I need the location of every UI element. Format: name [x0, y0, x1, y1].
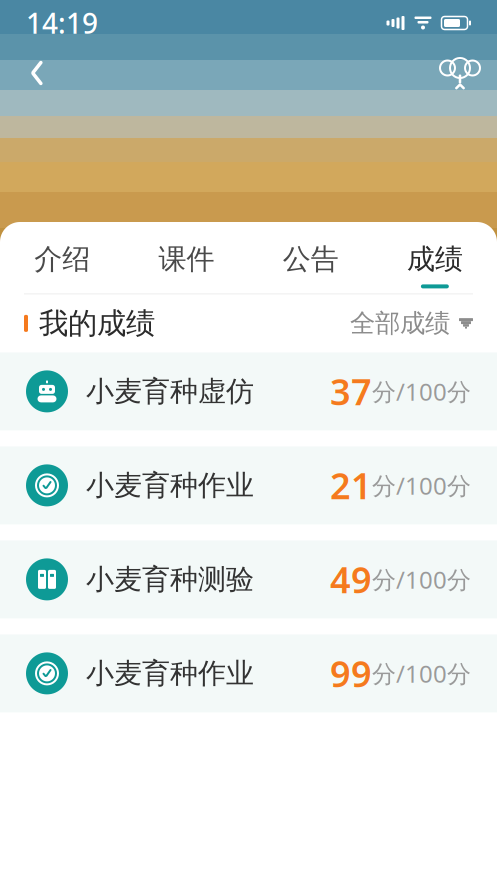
- staticText: 小麦育种作业: [86, 656, 254, 691]
- button[interactable]: 成绩: [373, 222, 497, 293]
- staticText: 我的成绩: [39, 305, 155, 341]
- staticText: 成绩: [407, 242, 463, 276]
- staticText: 全部成绩: [350, 308, 450, 339]
- staticText: 分/100分: [372, 375, 471, 407]
- staticText: 21: [330, 461, 372, 509]
- staticText: 小麦育种测验: [86, 562, 254, 597]
- staticText: 49: [330, 555, 372, 603]
- button[interactable]: 公告: [248, 222, 373, 293]
- staticText: 分/100分: [372, 657, 471, 689]
- staticText: 小麦育种虚仿: [86, 374, 254, 409]
- button[interactable]: 小麦育种虚仿: [0, 352, 497, 430]
- button[interactable]: 小麦育种作业: [0, 634, 497, 712]
- staticText: 小麦育种作业: [86, 468, 254, 503]
- staticText: 公告: [283, 242, 339, 276]
- button[interactable]: 全部成绩: [350, 302, 473, 345]
- button[interactable]: Download: [437, 50, 483, 96]
- button[interactable]: 课件: [124, 222, 248, 293]
- button[interactable]: 小麦育种测验: [0, 540, 497, 618]
- staticText: 介绍: [34, 242, 90, 276]
- button[interactable]: 小麦育种作业: [0, 446, 497, 524]
- staticText: 课件: [158, 242, 214, 276]
- staticText: 14:19: [26, 4, 98, 42]
- button[interactable]: 介绍: [0, 222, 124, 293]
- staticText: 37: [330, 367, 372, 415]
- button[interactable]: Back: [14, 50, 60, 96]
- staticText: 分/100分: [372, 563, 471, 595]
- staticText: 99: [330, 649, 372, 697]
- staticText: 分/100分: [372, 469, 471, 501]
